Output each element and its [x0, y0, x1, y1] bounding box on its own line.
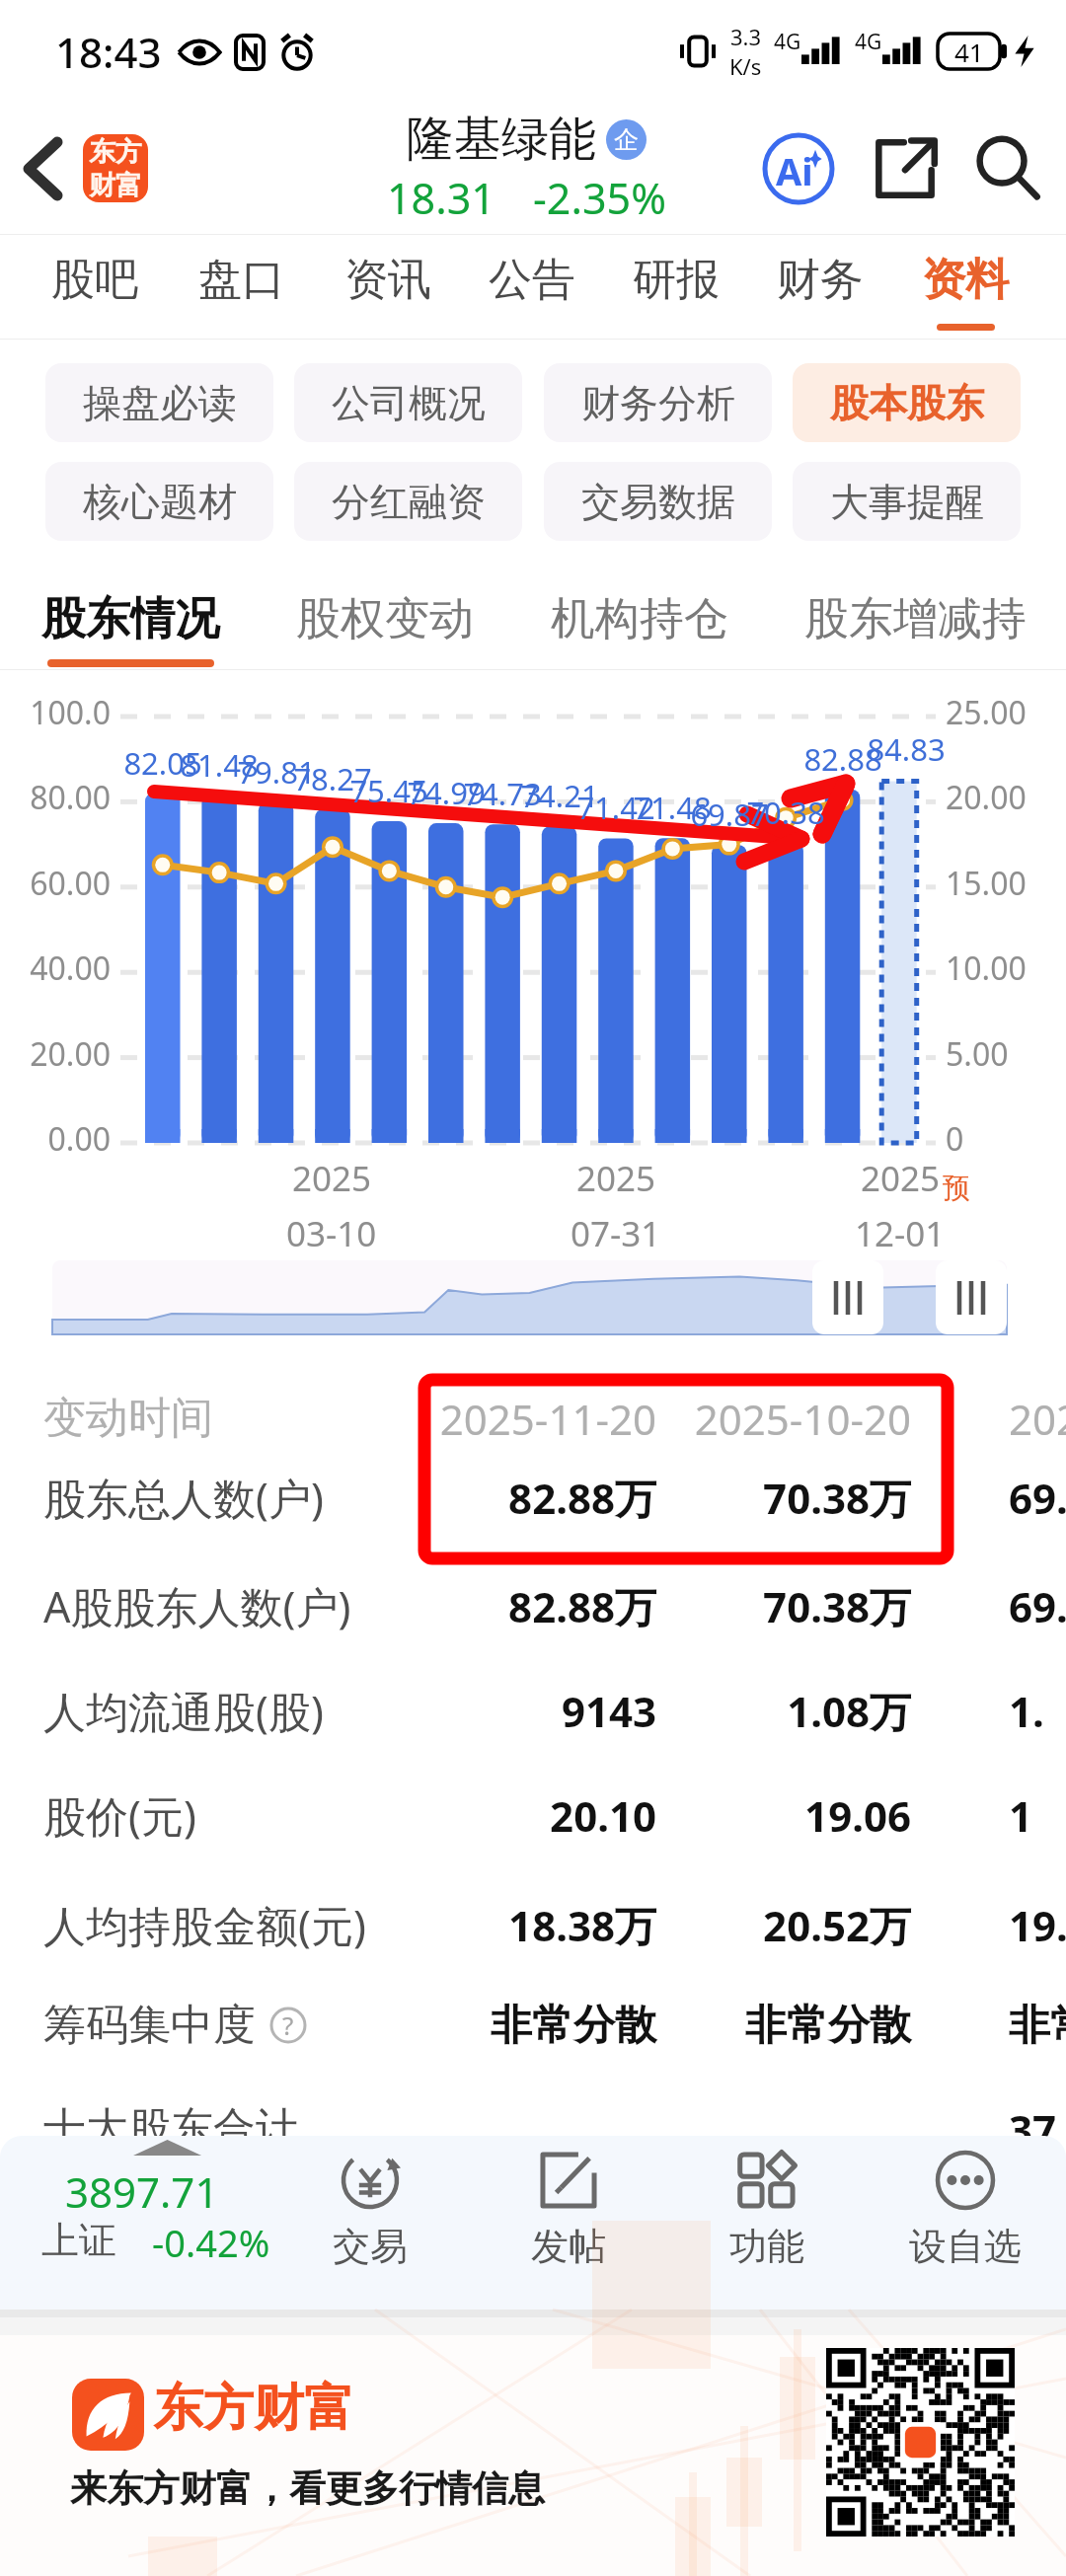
staticText: 82.88万	[380, 1470, 656, 1526]
staticText: 20.10	[380, 1787, 656, 1844]
staticText: 东方财富	[153, 2377, 354, 2440]
button[interactable]: 交易	[281, 2150, 459, 2293]
button[interactable]: AI assistant	[753, 123, 844, 214]
button[interactable]: Back	[4, 130, 81, 207]
button[interactable]: 股吧	[26, 235, 164, 339]
staticText: 12-01	[855, 1210, 946, 1257]
staticText: 核心题材	[83, 478, 237, 526]
staticText: 25.00	[946, 691, 1027, 734]
staticText: 15.00	[946, 862, 1027, 905]
staticText: 60.00	[0, 862, 111, 905]
button[interactable]: 股东增减持	[792, 558, 1038, 669]
button[interactable]: 股东情况	[7, 558, 254, 669]
staticText: 84.83	[852, 728, 960, 770]
staticText: 发帖	[531, 2223, 606, 2270]
staticText: 设自选	[909, 2223, 1022, 2270]
staticText: 03-10	[286, 1210, 377, 1257]
button[interactable]: 盘口	[173, 235, 311, 339]
staticText: 78.27	[278, 758, 387, 799]
staticText: 资讯	[344, 253, 431, 307]
staticText: 财务	[777, 253, 864, 307]
button[interactable]: 财务	[751, 235, 889, 339]
button[interactable]: 3897.71	[14, 2156, 290, 2284]
button[interactable]: 发帖	[480, 2150, 657, 2293]
staticText: 69.87	[675, 794, 784, 835]
button[interactable]: 股本股东	[793, 363, 1021, 442]
staticText: 79.81	[222, 751, 331, 793]
button[interactable]: 公司概况	[294, 363, 522, 442]
button[interactable]: 功能	[678, 2150, 856, 2293]
button[interactable]: 分红融资	[294, 462, 522, 541]
button[interactable]: 股权变动	[262, 558, 508, 669]
staticText: 19.	[1009, 1897, 1066, 1953]
staticText: 9143	[380, 1683, 656, 1739]
button[interactable]: East Money home	[83, 134, 148, 202]
button[interactable]: 研报	[607, 235, 745, 339]
staticText: 18.31	[387, 169, 495, 227]
staticText: 20.52万	[635, 1897, 911, 1953]
staticText: 资料	[922, 253, 1009, 307]
staticText: Ai	[776, 145, 813, 196]
staticText: 财富	[89, 169, 142, 202]
staticText: 企	[614, 124, 639, 155]
button[interactable]: 股价(元)	[0, 1776, 1066, 1855]
staticText: 1.08万	[635, 1683, 911, 1739]
staticText: 4G	[855, 28, 882, 56]
staticText: 操盘必读	[83, 379, 237, 427]
staticText: 隆基绿能	[407, 110, 596, 169]
staticText: 人均流通股(股)	[43, 1682, 324, 1740]
staticText: 41	[954, 35, 984, 69]
staticText: 4G	[774, 28, 801, 56]
button[interactable]: 大事提醒	[793, 462, 1021, 541]
button[interactable]: 交易数据	[544, 462, 772, 541]
staticText: ?	[282, 2008, 294, 2042]
staticText: 股本股东	[830, 379, 984, 427]
staticText: 功能	[729, 2223, 804, 2270]
button[interactable]: Search	[962, 123, 1053, 214]
button[interactable]: 十大股东合计	[0, 2089, 1066, 2168]
staticText: 10.00	[946, 947, 1027, 990]
button[interactable]: 变动时间	[0, 1379, 1066, 1458]
staticText: 75.45	[335, 770, 443, 811]
button[interactable]: 股东总人数(户)	[0, 1458, 1066, 1537]
staticText: 82.05	[109, 742, 217, 784]
staticText: 40.00	[0, 947, 111, 990]
staticText: 81.48	[165, 744, 273, 786]
staticText: -2.35%	[533, 169, 666, 227]
staticText: 0	[946, 1117, 964, 1161]
button[interactable]: Range start handle	[812, 1260, 883, 1334]
staticText: 财务分析	[581, 379, 735, 427]
staticText: 盘口	[198, 253, 285, 307]
staticText: 20.00	[0, 1032, 111, 1076]
staticText: 82.88	[789, 738, 897, 780]
button[interactable]: Share	[860, 123, 951, 214]
button[interactable]: 机构持仓	[516, 558, 763, 669]
staticText: 0.00	[0, 1117, 111, 1161]
staticText: 研报	[633, 253, 720, 307]
staticText: 18.38万	[380, 1897, 656, 1953]
button[interactable]: 设自选	[876, 2150, 1054, 2293]
button[interactable]: A股股东人数(户)	[0, 1566, 1066, 1645]
button[interactable]: 资料	[896, 235, 1034, 339]
button[interactable]: 公告	[463, 235, 601, 339]
staticText: 5.00	[946, 1032, 1009, 1076]
staticText: 2025-11-20	[380, 1391, 656, 1447]
button[interactable]: 资讯	[319, 235, 457, 339]
staticText: 3897.71	[65, 2163, 219, 2220]
button[interactable]: 人均流通股(股)	[0, 1671, 1066, 1750]
button[interactable]: 筹码集中度	[0, 1986, 1066, 2065]
staticText: 100.0	[0, 691, 111, 734]
staticText: 07-31	[571, 1210, 661, 1257]
button[interactable]: 人均持股金额(元)	[0, 1885, 1066, 1964]
staticText: 74.99	[392, 772, 500, 813]
button[interactable]: Range end handle	[936, 1260, 1007, 1334]
staticText: 74.73	[448, 773, 557, 814]
staticText: 71.42	[562, 787, 670, 828]
button[interactable]: 财务分析	[544, 363, 772, 442]
button[interactable]: 核心题材	[45, 462, 273, 541]
button[interactable]: 操盘必读	[45, 363, 273, 442]
staticText: 股东增减持	[804, 591, 1027, 647]
staticText: 69.	[1009, 1470, 1066, 1526]
staticText: 筹码集中度	[43, 1999, 256, 2052]
staticText: 公告	[489, 253, 575, 307]
